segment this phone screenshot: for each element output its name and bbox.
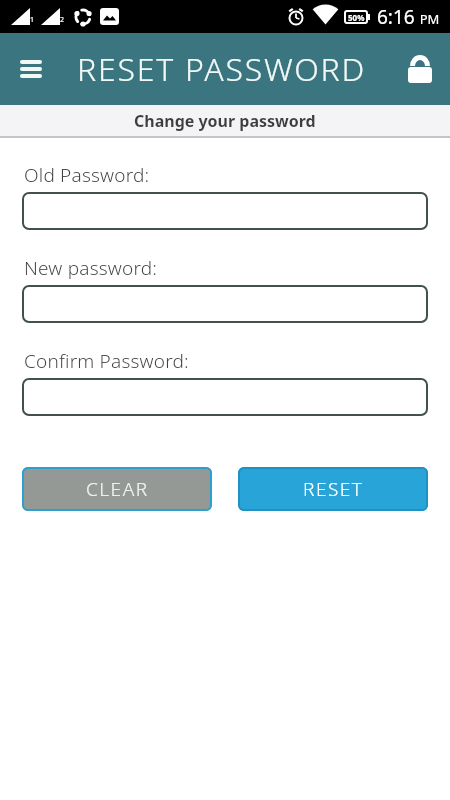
staticText: 2 xyxy=(60,15,65,25)
staticText: CLEAR xyxy=(86,476,149,502)
button[interactable]: CLEAR xyxy=(22,467,212,511)
staticText: Change your password xyxy=(134,110,316,132)
staticText: RESET PASSWORD xyxy=(77,47,367,91)
staticText: 50% xyxy=(348,12,365,23)
button[interactable] xyxy=(22,192,428,230)
button[interactable] xyxy=(22,285,428,323)
staticText: RESET xyxy=(303,476,364,502)
button[interactable] xyxy=(394,33,446,105)
staticText: 6:16 PM xyxy=(377,4,440,30)
button[interactable]: RESET xyxy=(238,467,428,511)
button[interactable] xyxy=(0,33,62,105)
button[interactable] xyxy=(22,378,428,416)
staticText: 1 xyxy=(30,15,35,25)
staticText: Old Password: xyxy=(24,162,150,188)
staticText: Confirm Password: xyxy=(24,348,189,374)
staticText: New password: xyxy=(24,255,158,281)
